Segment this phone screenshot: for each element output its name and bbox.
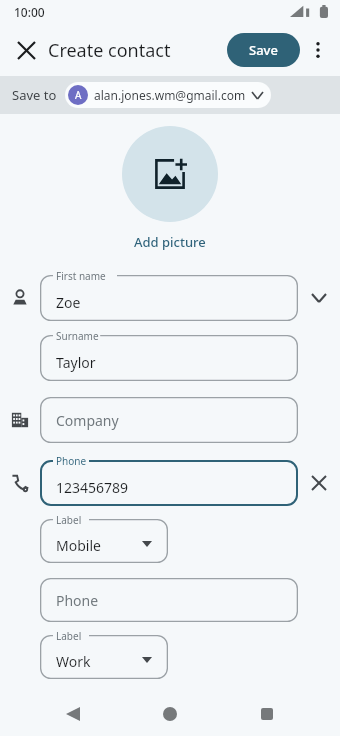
staticText: Save — [249, 41, 278, 59]
button[interactable]: Back — [49, 692, 97, 736]
button[interactable]: More options — [300, 32, 336, 68]
staticText: 10:00 — [14, 4, 45, 20]
button[interactable]: Surname — [40, 335, 298, 381]
button[interactable]: Label — [40, 519, 168, 563]
button[interactable]: Add picture — [134, 233, 206, 251]
button[interactable]: Company — [40, 397, 298, 443]
staticText: Taylor — [56, 353, 96, 372]
button[interactable]: Recent apps — [243, 692, 291, 736]
staticText: 123456789 — [56, 478, 129, 497]
staticText: Zoe — [56, 293, 81, 312]
button[interactable]: Expand name fields — [298, 273, 340, 323]
staticText: Mobile — [56, 536, 101, 555]
button[interactable]: Add picture — [122, 126, 218, 222]
button[interactable]: Home — [146, 692, 194, 736]
staticText: alan.jones.wm@gmail.com — [94, 87, 246, 103]
staticText: Surname — [56, 329, 99, 343]
staticText: Company — [56, 411, 119, 430]
button[interactable]: Save — [227, 33, 300, 67]
button[interactable]: Phone — [40, 578, 298, 622]
staticText: Save to — [12, 86, 57, 104]
staticText: Phone — [56, 591, 99, 610]
button[interactable]: Clear phone — [298, 460, 340, 506]
staticText: First name — [56, 269, 106, 283]
staticText: Create contact — [48, 38, 171, 63]
staticText: Work — [56, 652, 91, 671]
staticText: Label — [56, 513, 82, 527]
button[interactable]: Close — [6, 30, 46, 70]
staticText: A — [75, 88, 82, 102]
button[interactable]: First name — [40, 275, 298, 321]
staticText: Label — [56, 629, 82, 643]
button[interactable]: A — [65, 82, 271, 108]
button[interactable]: Label — [40, 635, 168, 679]
staticText: Phone — [56, 454, 87, 468]
button[interactable]: Phone — [40, 460, 298, 506]
